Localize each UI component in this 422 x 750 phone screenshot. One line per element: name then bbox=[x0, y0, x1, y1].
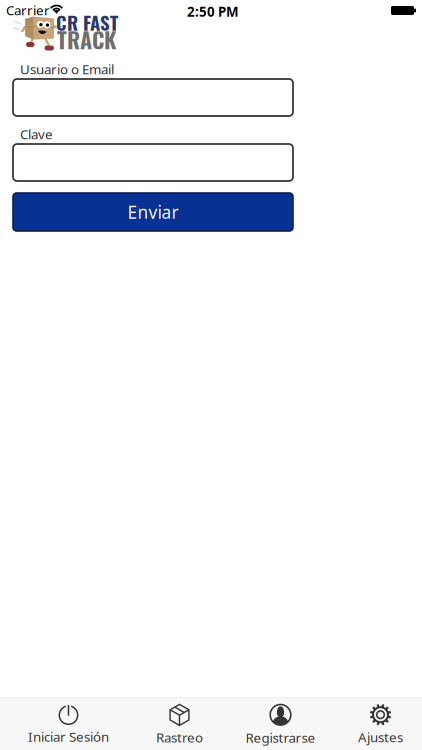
staticText: TRACK bbox=[57, 23, 116, 56]
staticText: Clave bbox=[20, 125, 53, 143]
staticText: Carrier bbox=[6, 1, 50, 19]
staticText: Enviar bbox=[127, 200, 178, 224]
button[interactable]: Ajustes bbox=[339, 697, 422, 750]
staticText: Registrarse bbox=[245, 728, 315, 747]
button[interactable]: Registrarse bbox=[222, 697, 339, 750]
staticText: Iniciar Sesión bbox=[28, 727, 109, 746]
staticText: Usuario o Email bbox=[20, 60, 114, 78]
button[interactable]: Enviar bbox=[13, 193, 293, 231]
button[interactable]: Iniciar Sesión bbox=[0, 697, 137, 750]
staticText: CR FAST bbox=[56, 8, 118, 36]
staticText: Rastreo bbox=[156, 728, 203, 746]
staticText: 2:50 PM bbox=[187, 2, 239, 21]
button[interactable]: Rastreo bbox=[137, 697, 222, 750]
staticText: Ajustes bbox=[358, 728, 403, 746]
